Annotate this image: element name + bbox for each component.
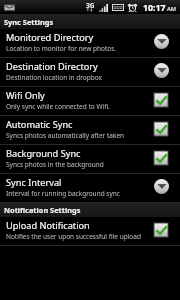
staticText: Monitored Directory xyxy=(6,31,94,44)
staticText: Destination location in dropbox xyxy=(6,73,103,82)
button[interactable]: Destination Directory xyxy=(0,58,180,87)
staticText: 3G xyxy=(86,1,95,10)
button[interactable]: Background Sync xyxy=(0,145,180,174)
staticText: Notification Settings xyxy=(4,205,81,215)
staticText: Background Sync xyxy=(6,147,81,160)
staticText: 10:17 xyxy=(143,2,166,14)
staticText: Syncs photos in the background xyxy=(6,160,104,169)
other: Toggle xyxy=(153,222,169,238)
other: Open selector xyxy=(154,179,169,194)
button[interactable]: Monitored Directory xyxy=(0,29,180,58)
button[interactable]: Wifi Only xyxy=(0,87,180,116)
button[interactable]: Upload Notification xyxy=(0,217,180,246)
staticText: Syncs photos automatically after taken xyxy=(6,131,125,140)
staticText: Sync Interval xyxy=(6,176,62,189)
button[interactable]: Sync Interval xyxy=(0,174,180,203)
staticText: Wifi Only xyxy=(6,89,45,102)
other: Open selector xyxy=(154,63,169,78)
staticText: Destination Directory xyxy=(6,60,98,73)
staticText: Automatic Sync xyxy=(6,118,73,131)
staticText: Only sync while connected to Wifi. xyxy=(6,102,110,111)
staticText: Location to monitor for new photos. xyxy=(6,44,117,53)
staticText: Notifies the user upon successful file u… xyxy=(6,232,141,241)
button[interactable]: Automatic Sync xyxy=(0,116,180,145)
other: Toggle xyxy=(153,121,169,137)
staticText: Sync Settings xyxy=(4,17,54,27)
staticText: Upload Notification xyxy=(6,219,90,232)
staticText: AM xyxy=(167,5,177,13)
other: Toggle xyxy=(153,92,169,108)
staticText: Interval for running background sync xyxy=(6,189,120,198)
other: Open selector xyxy=(154,34,169,49)
other: Toggle xyxy=(153,150,169,166)
